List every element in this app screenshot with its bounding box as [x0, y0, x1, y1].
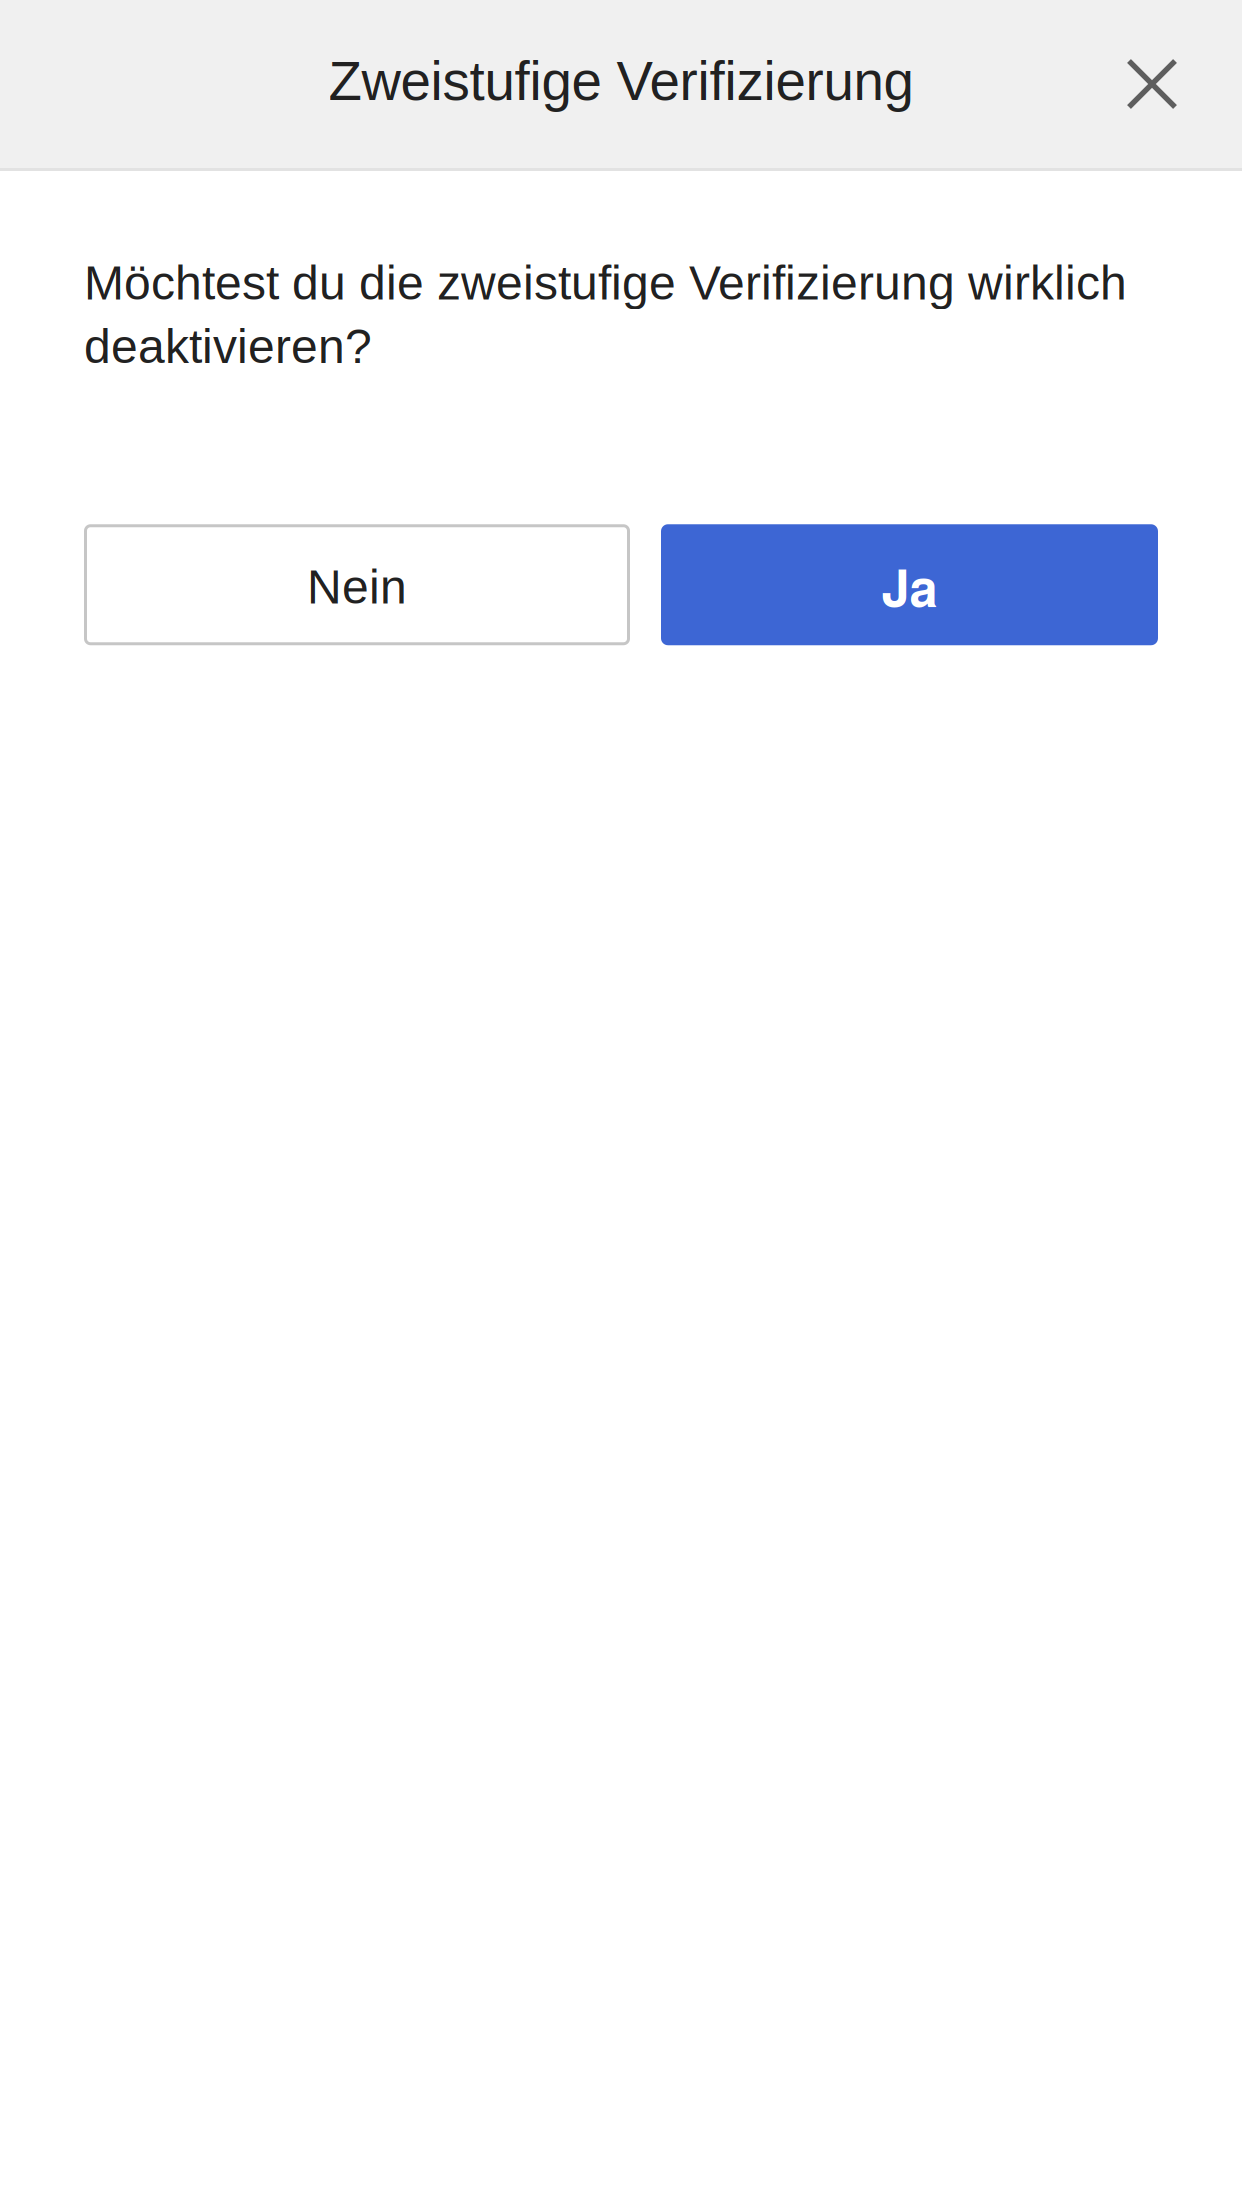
button[interactable]: Ja [661, 524, 1158, 645]
button[interactable]: Schließen [1093, 25, 1211, 143]
staticText: Möchtest du die zweistufige Verifizierun… [84, 256, 1127, 373]
staticText: Ja [881, 549, 937, 622]
staticText: Zweistufige Verifizierung [328, 50, 913, 112]
staticText: Nein [307, 560, 407, 613]
button[interactable]: Nein [84, 524, 630, 645]
